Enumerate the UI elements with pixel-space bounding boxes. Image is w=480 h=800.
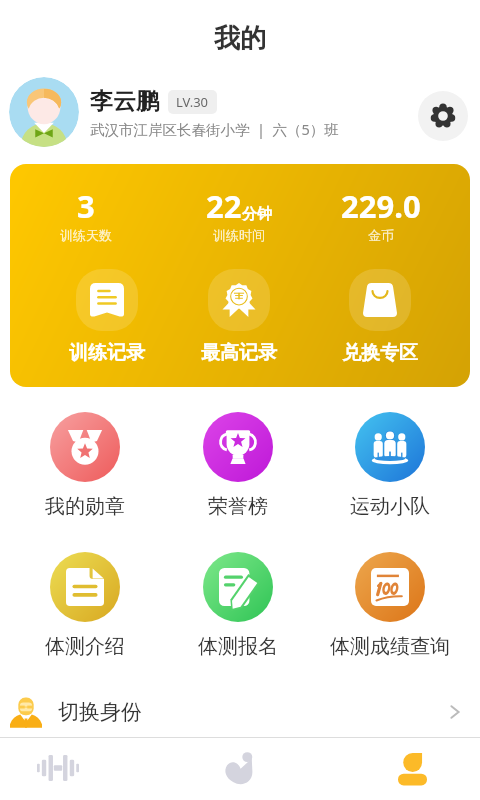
- staticText: 体测介绍: [45, 634, 125, 656]
- button[interactable]: 切换身份: [0, 686, 480, 737]
- staticText: 金币: [368, 227, 394, 243]
- staticText: 运动小队: [350, 494, 430, 516]
- button[interactable]: Profile: [382, 745, 442, 791]
- button[interactable]: 体测介绍: [10, 552, 160, 656]
- staticText: 22: [206, 185, 242, 227]
- staticText: 3: [77, 185, 95, 227]
- button[interactable]: 兑换专区: [340, 269, 420, 369]
- staticText: 训练记录: [69, 341, 145, 365]
- button[interactable]: 荣誉榜: [163, 412, 313, 516]
- staticText: 体测报名: [198, 634, 278, 656]
- button[interactable]: 训练记录: [67, 269, 147, 369]
- button[interactable]: Settings: [418, 91, 468, 141]
- staticText: 切换身份: [58, 699, 142, 725]
- staticText: 荣誉榜: [208, 494, 268, 516]
- staticText: 训练天数: [60, 227, 112, 243]
- staticText: 训练时间: [213, 227, 265, 243]
- staticText: 我的勋章: [45, 494, 125, 516]
- staticText: 体测成绩查询: [330, 634, 450, 656]
- button[interactable]: Training: [28, 745, 88, 791]
- staticText: 武汉市江岸区长春街小学 | 六（5）班: [90, 119, 339, 139]
- button[interactable]: Exercise: [208, 745, 268, 791]
- button[interactable]: 体测报名: [163, 552, 313, 656]
- button[interactable]: 最高记录: [199, 269, 279, 369]
- staticText: LV.30: [176, 93, 209, 111]
- button[interactable]: 体测成绩查询: [315, 552, 465, 656]
- staticText: 最高记录: [201, 341, 277, 365]
- staticText: 我的: [214, 22, 266, 55]
- staticText: 分钟: [242, 205, 272, 224]
- staticText: 李云鹏: [90, 87, 159, 116]
- button[interactable]: 我的勋章: [10, 412, 160, 516]
- button[interactable]: 运动小队: [315, 412, 465, 516]
- staticText: 229.0: [341, 185, 421, 227]
- staticText: 兑换专区: [342, 341, 418, 365]
